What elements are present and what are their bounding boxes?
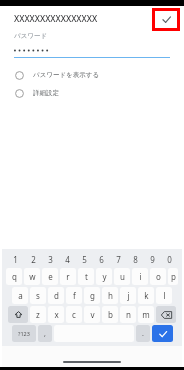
staticText: 0	[167, 254, 172, 265]
staticText: c	[72, 309, 76, 320]
button[interactable]: 詳細設定	[2, 84, 182, 102]
button[interactable]: d	[48, 287, 64, 304]
button[interactable]: b	[102, 306, 118, 323]
staticText: 6	[99, 254, 104, 265]
button[interactable]: n	[120, 306, 136, 323]
staticText: k	[144, 290, 149, 301]
staticText: q	[12, 271, 17, 282]
button[interactable]: 6	[93, 252, 110, 266]
button[interactable]: y	[96, 268, 112, 285]
staticText: 3	[48, 254, 53, 265]
button[interactable]: o	[150, 268, 166, 285]
button[interactable]: ?123	[12, 325, 36, 342]
staticText: 7	[116, 254, 121, 265]
staticText: v	[90, 309, 95, 320]
staticText: i	[139, 271, 142, 282]
button[interactable]: m	[138, 306, 154, 323]
button[interactable]: .	[136, 325, 150, 342]
staticText: s	[36, 290, 40, 301]
button[interactable]: a	[12, 287, 28, 304]
button[interactable]: l	[156, 287, 172, 304]
button[interactable]: 2	[24, 252, 42, 266]
staticText: w	[29, 271, 36, 282]
staticText: e	[48, 271, 53, 282]
button[interactable]	[14, 44, 170, 55]
button[interactable]: q	[6, 268, 22, 285]
button[interactable]: 8	[127, 252, 144, 266]
staticText: t	[85, 271, 88, 282]
staticText: n	[126, 309, 131, 320]
button[interactable]: h	[102, 287, 118, 304]
staticText: 9	[150, 254, 155, 265]
staticText: z	[36, 309, 40, 320]
button[interactable]: Backspace	[156, 306, 176, 323]
button[interactable]: p	[168, 268, 178, 285]
staticText: パスワード	[14, 32, 48, 40]
staticText: 5	[82, 254, 87, 265]
button[interactable]: j	[120, 287, 136, 304]
staticText: g	[90, 290, 95, 301]
staticText: y	[102, 271, 107, 282]
button[interactable]: パスワードを表示する	[2, 66, 182, 84]
staticText: r	[66, 271, 70, 282]
button[interactable]: k	[138, 287, 154, 304]
staticText: ?123	[18, 330, 30, 337]
button[interactable]: ホーム	[63, 361, 121, 363]
staticText: f	[73, 290, 76, 301]
button[interactable]: 5	[76, 252, 93, 266]
button[interactable]: s	[30, 287, 46, 304]
button[interactable]: ,	[38, 325, 52, 342]
button[interactable]: i	[132, 268, 148, 285]
button[interactable]: 7	[110, 252, 127, 266]
staticText: 2	[31, 254, 36, 265]
staticText: o	[156, 271, 161, 282]
staticText: 1	[13, 254, 18, 265]
button[interactable]: r	[60, 268, 76, 285]
button[interactable]: 4	[59, 252, 76, 266]
staticText: ,	[44, 329, 46, 339]
button[interactable]: 0	[161, 252, 178, 266]
button[interactable]: g	[84, 287, 100, 304]
staticText: m	[142, 309, 150, 320]
button[interactable]: w	[24, 268, 40, 285]
staticText: h	[108, 290, 113, 301]
staticText: p	[171, 271, 176, 282]
staticText: 8	[133, 254, 138, 265]
button[interactable]: v	[84, 306, 100, 323]
staticText: パスワードを表示する	[33, 71, 100, 79]
staticText: d	[54, 290, 59, 301]
staticText: b	[108, 309, 113, 320]
staticText: 詳細設定	[33, 89, 59, 97]
button[interactable]: z	[30, 306, 46, 323]
staticText: x	[54, 309, 59, 320]
staticText: u	[120, 271, 125, 282]
button[interactable]: Shift	[8, 306, 28, 323]
staticText: .	[142, 329, 144, 339]
button[interactable]: t	[78, 268, 94, 285]
staticText: a	[18, 290, 23, 301]
button[interactable]: Enter	[152, 325, 173, 342]
button[interactable]: 確定	[155, 11, 177, 28]
button[interactable]: u	[114, 268, 130, 285]
button[interactable]: c	[66, 306, 82, 323]
staticText: XXXXXXXXXXXXXXXX	[14, 13, 98, 25]
button[interactable]: 3	[42, 252, 59, 266]
button[interactable]: 1	[6, 252, 24, 266]
button[interactable]: x	[48, 306, 64, 323]
button[interactable]: 9	[144, 252, 161, 266]
staticText: l	[163, 290, 166, 301]
staticText: j	[127, 290, 130, 301]
button[interactable]: e	[42, 268, 58, 285]
button[interactable]: f	[66, 287, 82, 304]
staticText: 4	[65, 254, 70, 265]
